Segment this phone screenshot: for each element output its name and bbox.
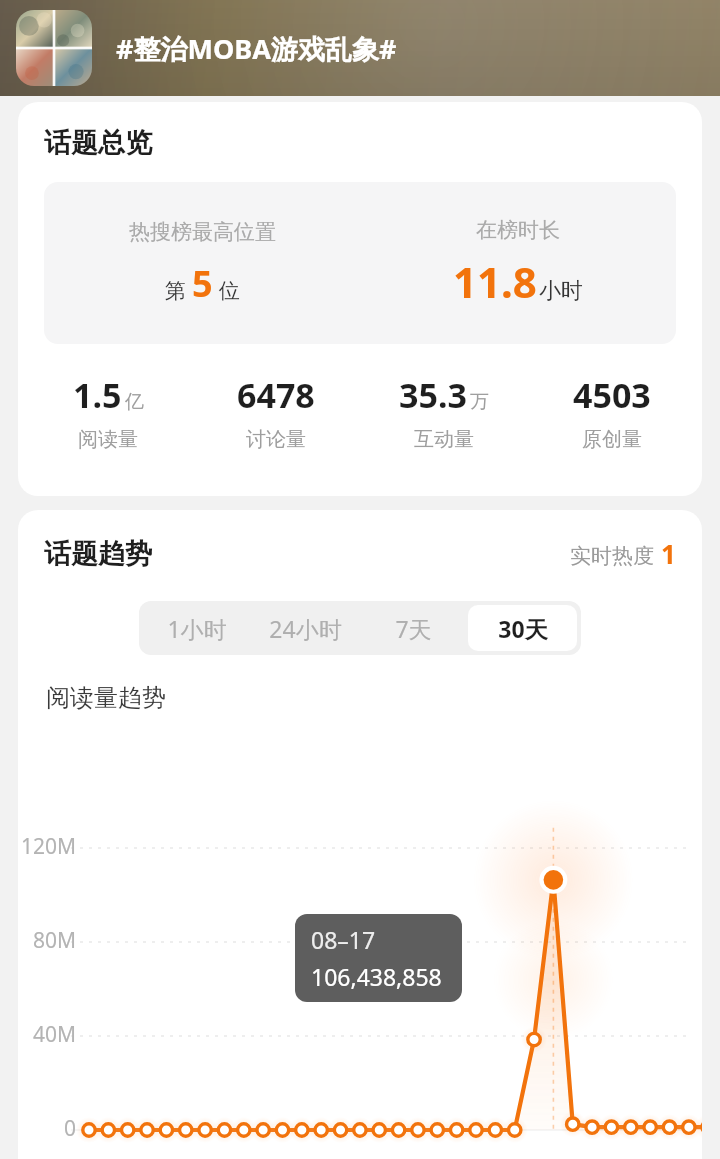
staticText: 1.5	[73, 372, 122, 418]
button[interactable]: 6478	[192, 370, 360, 454]
staticText: 讨论量	[246, 427, 306, 452]
button[interactable]: 话题总览	[18, 102, 702, 496]
staticText: 位	[219, 278, 240, 304]
staticText: 30天	[498, 613, 548, 644]
button[interactable]: 7天	[359, 605, 468, 651]
staticText: 亿	[125, 390, 144, 414]
staticText: 7天	[395, 613, 432, 644]
staticText: 106,438,858	[311, 961, 442, 992]
staticText: #整治MOBA游戏乱象#	[116, 30, 397, 67]
staticText: 1小时	[167, 613, 227, 644]
staticText: 08–17	[311, 924, 376, 955]
button[interactable]: Topic cover image	[16, 10, 92, 86]
button[interactable]: 1.5	[24, 370, 192, 454]
staticText: 1	[661, 536, 676, 571]
staticText: 热搜榜最高位置	[129, 219, 276, 245]
staticText: 话题总览	[44, 126, 152, 160]
staticText: 24小时	[269, 613, 342, 644]
staticText: 万	[470, 390, 489, 414]
staticText: 在榜时长	[476, 217, 560, 243]
staticText: 11.8	[453, 253, 537, 310]
staticText: 原创量	[582, 427, 642, 452]
staticText: 35.3	[399, 372, 467, 418]
button[interactable]: 热搜榜最高位置	[44, 182, 676, 344]
staticText: 互动量	[414, 427, 474, 452]
staticText: 40M	[18, 1020, 76, 1049]
staticText: 阅读量趋势	[46, 683, 166, 713]
button[interactable]: 1小时	[143, 605, 251, 651]
staticText: 120M	[18, 832, 76, 861]
staticText: 小时	[539, 277, 583, 305]
staticText: 0	[18, 1114, 76, 1143]
staticText: 实时热度	[570, 543, 654, 569]
button[interactable]: 4503	[528, 370, 696, 454]
staticText: 6478	[237, 372, 315, 418]
staticText: 5	[192, 259, 213, 308]
staticText: 话题趋势	[44, 537, 152, 571]
button[interactable]: 35.3	[360, 370, 528, 454]
button[interactable]: 实时热度	[570, 536, 676, 571]
staticText: 80M	[18, 926, 76, 955]
button[interactable]: 30天	[468, 605, 577, 651]
button[interactable]: 24小时	[251, 605, 359, 651]
staticText: 第	[165, 278, 186, 304]
staticText: 4503	[573, 372, 651, 418]
staticText: 阅读量	[78, 427, 138, 452]
